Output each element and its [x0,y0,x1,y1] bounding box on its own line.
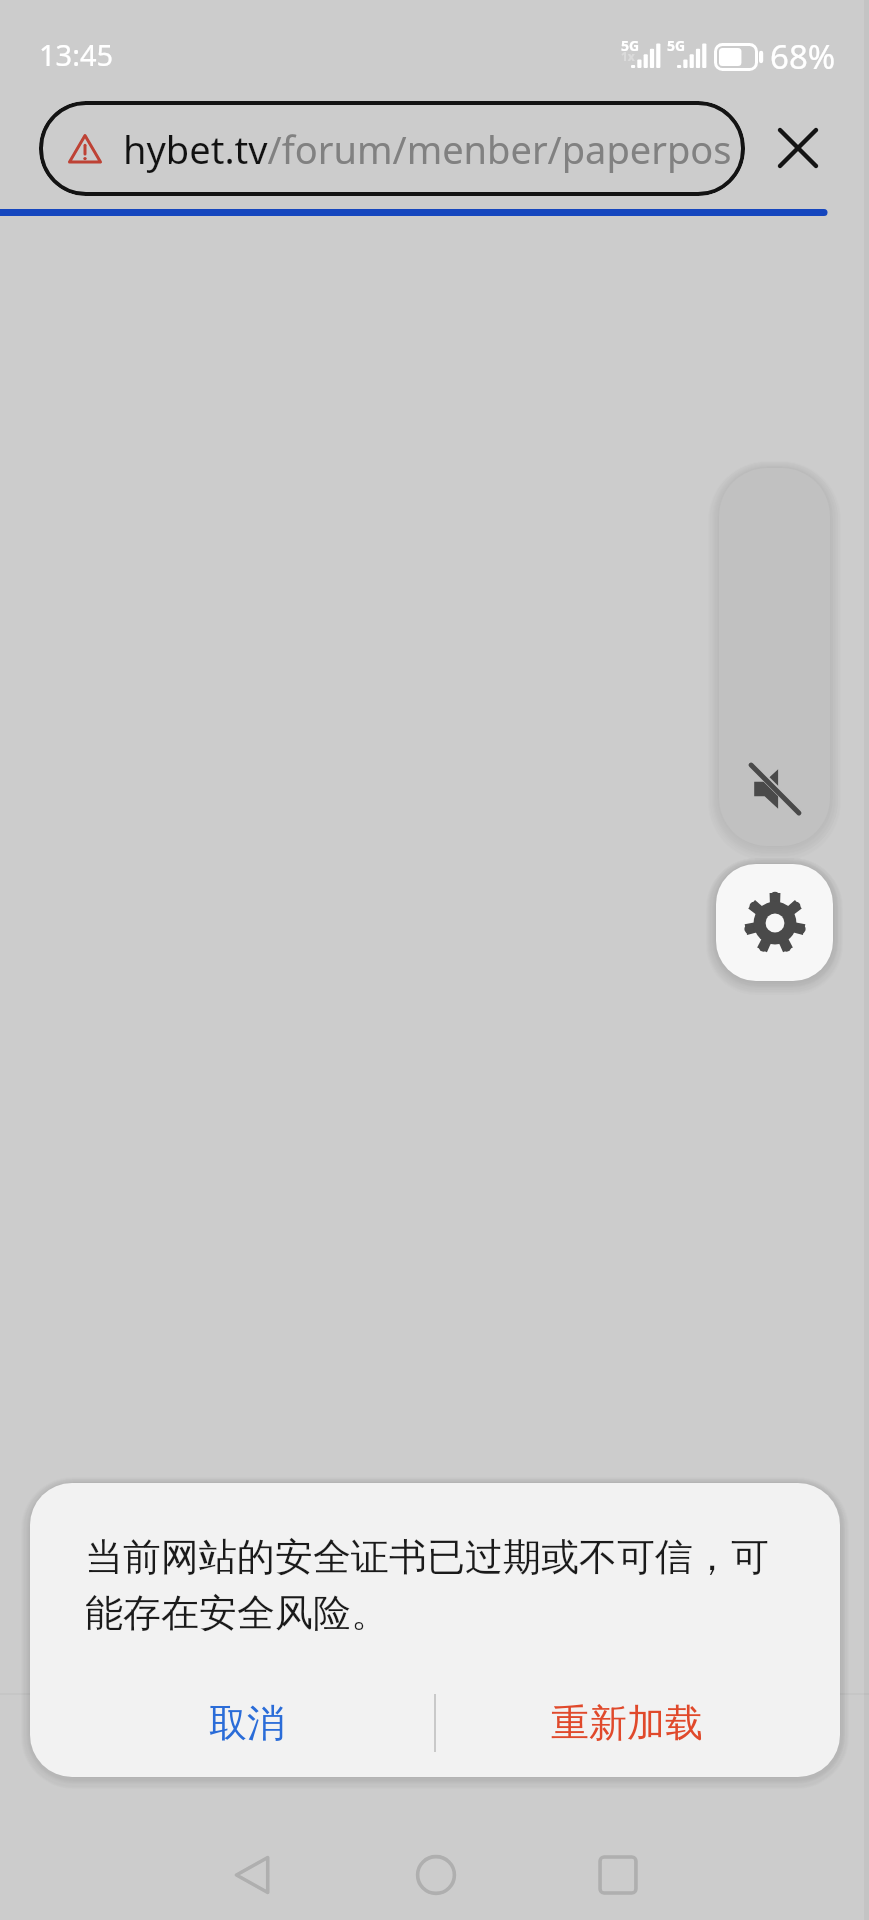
button[interactable]: 取消 [30,1669,435,1777]
staticText: 1x [621,48,635,64]
staticText: 5G [621,36,640,55]
button[interactable]: Back [205,1827,301,1920]
button[interactable]: Settings [716,864,833,981]
staticText: hybet.tv/forum/menber/paperpost [123,123,731,175]
staticText: 13:45 [39,35,114,74]
button[interactable]: Mute [719,468,830,846]
button[interactable]: hybet.tv/forum/menber/paperpost [39,101,745,196]
staticText: 68% [770,34,836,79]
button[interactable]: Close [762,112,834,184]
staticText: 能存在安全风险。 [85,1589,389,1637]
staticText: 取消 [209,1699,285,1747]
staticText: 当前网站的安全证书已过期或不可信，可 [85,1533,769,1581]
staticText: 5G [667,36,686,55]
button[interactable]: Recents [570,1827,666,1920]
staticText: 重新加载 [551,1699,703,1747]
button[interactable]: Home [388,1827,484,1920]
button[interactable]: 重新加载 [437,1669,840,1777]
